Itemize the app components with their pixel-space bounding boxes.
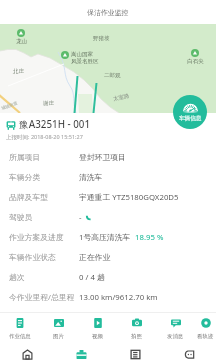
staticText: 18.95 % bbox=[135, 232, 164, 243]
staticText: 图片 bbox=[53, 333, 64, 340]
button[interactable]: 车辆作业状态 bbox=[0, 247, 216, 267]
staticText: 拍照 bbox=[131, 333, 142, 340]
staticText: 车辆作业状态 bbox=[9, 252, 56, 262]
button[interactable]: 拍照 bbox=[117, 313, 156, 342]
staticText: 上报时间: 2018-08-20 15:51:27 bbox=[6, 133, 83, 141]
staticText: 0 / 4 趟 bbox=[79, 272, 105, 283]
staticText: 正在作业 bbox=[79, 252, 111, 262]
button[interactable]: Home bbox=[0, 342, 54, 360]
button[interactable]: 驾驶员 bbox=[0, 207, 216, 227]
staticText: 看轨迹 bbox=[197, 333, 214, 340]
staticText: 宇通重工 YTZ5180GQX20D5 bbox=[79, 192, 179, 203]
staticText: 车辆分类 bbox=[9, 172, 41, 182]
staticText: 龙山 bbox=[16, 38, 27, 45]
button[interactable]: 品牌及车型 bbox=[0, 187, 216, 207]
button[interactable]: 豫A3251H - 001 bbox=[0, 113, 216, 147]
button[interactable]: Apps bbox=[54, 342, 108, 360]
staticText: 清洗车 bbox=[79, 172, 103, 182]
staticText: 豫A3251H - 001 bbox=[19, 118, 91, 131]
staticText: 谢庄 bbox=[43, 100, 54, 107]
button[interactable]: 发消息 bbox=[156, 313, 195, 342]
staticText: 视频 bbox=[92, 333, 103, 340]
staticText: - bbox=[79, 212, 82, 223]
staticText: 趟次 bbox=[9, 272, 25, 282]
button[interactable]: 作业信息 bbox=[0, 313, 39, 342]
staticText: 驾驶员 bbox=[9, 212, 33, 222]
staticText: 保洁作业监控 bbox=[87, 8, 129, 17]
button[interactable]: Recents bbox=[108, 342, 162, 360]
button[interactable]: 视频 bbox=[78, 313, 117, 342]
staticText: 登封环卫项目 bbox=[79, 152, 126, 162]
button[interactable]: 车辆分类 bbox=[0, 167, 216, 187]
staticText: 发消息 bbox=[167, 333, 184, 340]
staticText: 13.00 km/9612.70 km bbox=[79, 292, 158, 303]
staticText: 白石尖 bbox=[187, 58, 204, 65]
staticText: 太室路 bbox=[112, 92, 130, 103]
staticText: 车辆信息 bbox=[179, 115, 202, 122]
staticText: 野猪坡 bbox=[93, 35, 110, 42]
staticText: 所属项目 bbox=[9, 152, 41, 162]
staticText: 今作业里程/总里程 bbox=[9, 292, 75, 303]
staticText: 1号高压清洗车 bbox=[79, 232, 131, 243]
staticText: 作业方案及进度 bbox=[9, 232, 64, 242]
button[interactable]: Back bbox=[162, 342, 216, 360]
staticText: 嵩山国家 风景名胜区 bbox=[71, 51, 99, 64]
staticText: 作业信息 bbox=[9, 333, 31, 340]
button[interactable]: 图片 bbox=[39, 313, 78, 342]
button[interactable]: 趟次 bbox=[0, 267, 216, 287]
staticText: 二郎观 bbox=[104, 72, 121, 79]
button[interactable]: 今作业里程/总里程 bbox=[0, 287, 216, 307]
staticText: 北庄 bbox=[13, 68, 24, 75]
button[interactable]: 车辆信息 bbox=[173, 95, 207, 129]
button[interactable]: 作业方案及进度 bbox=[0, 227, 216, 247]
staticText: 城镇街道 bbox=[1, 100, 18, 111]
staticText: 品牌及车型 bbox=[9, 192, 48, 202]
button[interactable]: 看轨迹 bbox=[195, 313, 216, 342]
button[interactable]: 所属项目 bbox=[0, 147, 216, 167]
